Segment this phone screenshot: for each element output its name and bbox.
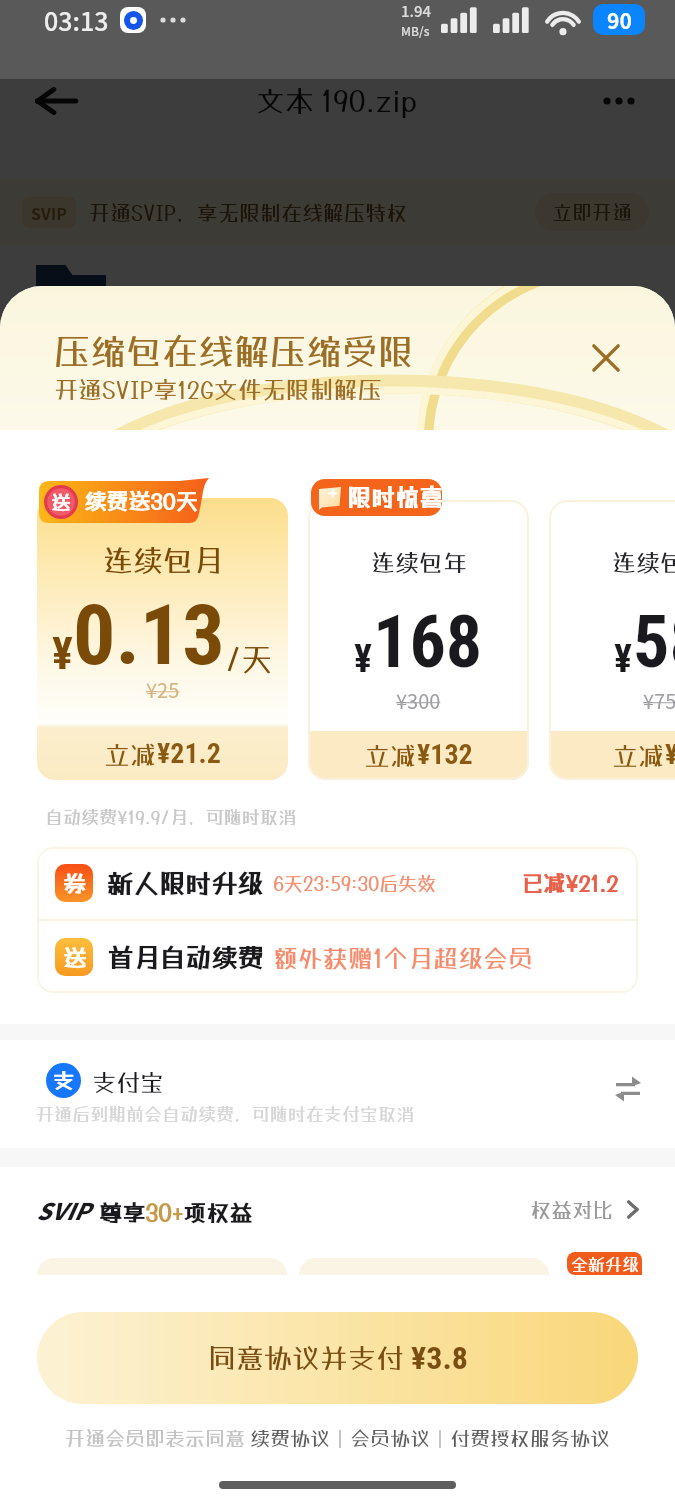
staticText: 文本 190.zip <box>256 84 418 118</box>
staticText: 压缩包在线解压缩受限 <box>54 330 415 372</box>
staticText: 168 <box>373 600 483 684</box>
staticText: 开通后到期前会自动续费，可随时在支付宝取消 <box>36 1103 414 1124</box>
staticText: 90 <box>607 5 632 35</box>
staticText: 1.94 <box>401 0 432 22</box>
staticText: 03:13 <box>44 2 109 38</box>
staticText: 立减 <box>612 740 665 771</box>
staticText: ¥17 <box>665 738 675 771</box>
staticText: 立减 <box>104 739 157 770</box>
staticText: ¥21.2 <box>157 737 221 770</box>
button[interactable] <box>299 1258 549 1275</box>
staticText: ¥ <box>614 637 633 682</box>
staticText: 限时惊喜 <box>347 483 442 511</box>
staticText: 续费送30天 <box>84 488 198 514</box>
staticText: ¥300 <box>396 686 441 715</box>
staticText: 全新升级 <box>571 1254 639 1274</box>
staticText: 连续包月 <box>103 543 223 578</box>
staticText: 立减 <box>364 740 417 771</box>
staticText: ¥3.8 <box>411 1339 468 1377</box>
staticText: 连续包季 <box>612 548 675 576</box>
staticText: ¥75 <box>643 686 675 715</box>
other: Change payment method <box>615 1076 641 1102</box>
staticText: 0.13 <box>73 586 225 684</box>
button[interactable]: Close <box>587 339 625 377</box>
button[interactable]: 会员协议 <box>350 1426 430 1450</box>
button[interactable]: 连续包年 <box>308 500 529 780</box>
staticText: SVIP <box>31 201 67 224</box>
staticText: 30+ <box>145 1199 183 1226</box>
staticText: 首月自动续费 <box>107 942 264 973</box>
staticText: 自动续费¥19.9/月，可随时取消 <box>45 806 296 827</box>
staticText: /天 <box>225 641 273 678</box>
staticText: 送 <box>51 491 71 513</box>
button[interactable]: 同意协议并支付 <box>37 1312 638 1404</box>
staticText: 开通SVIP，享无限制在线解压特权 <box>89 200 407 225</box>
staticText: 新人限时升级 <box>107 868 264 899</box>
staticText: ¥ <box>354 637 373 682</box>
staticText: MB/s <box>401 22 430 39</box>
staticText: 支付宝 <box>92 1068 164 1096</box>
staticText: 支 <box>53 1068 74 1093</box>
button[interactable] <box>37 1258 287 1275</box>
staticText: 券 <box>63 870 86 897</box>
button[interactable]: 续费协议 <box>250 1426 330 1450</box>
staticText: 已减¥21.2 <box>521 870 618 896</box>
staticText: ¥ <box>52 628 73 680</box>
staticText: 送 <box>63 944 86 971</box>
button[interactable]: More options <box>597 79 641 123</box>
staticText: 立即开通 <box>552 200 632 224</box>
staticText: 项权益 <box>183 1199 252 1226</box>
staticText: 尊享 <box>99 1199 145 1226</box>
staticText: 权益对比 <box>530 1197 614 1222</box>
staticText: | <box>430 1426 450 1450</box>
staticText: SVIP <box>36 1193 90 1226</box>
staticText: 6天23:59:30后失效 <box>273 872 437 894</box>
staticText: | <box>330 1426 350 1450</box>
button[interactable]: 支 <box>0 1040 675 1148</box>
button[interactable]: Back <box>34 79 78 123</box>
staticText: 58 <box>633 600 675 684</box>
button[interactable]: 连续包月 <box>37 498 288 780</box>
staticText: 同意协议并支付 <box>208 1342 411 1375</box>
staticText: 额外获赠1个月超级会员 <box>273 943 533 972</box>
staticText: 开通SVIP享12G文件无限制解压 <box>54 375 382 403</box>
button[interactable]: 付费授权服务协议 <box>450 1426 610 1450</box>
staticText: 开通会员即表示同意 <box>65 1426 250 1450</box>
staticText: 连续包年 <box>371 548 467 576</box>
staticText: ¥25 <box>146 675 180 704</box>
staticText: ¥132 <box>417 738 473 771</box>
button[interactable]: 权益对比 <box>530 1197 642 1222</box>
button[interactable]: 连续包季 <box>549 500 675 780</box>
